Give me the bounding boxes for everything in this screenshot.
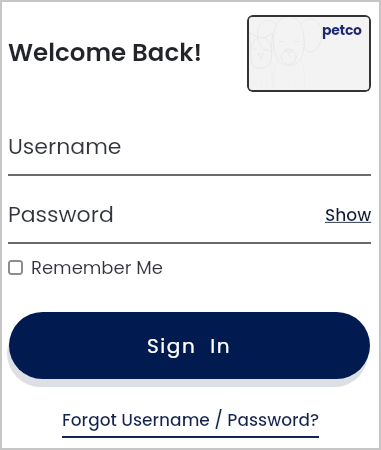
button[interactable]: Password xyxy=(8,190,371,244)
staticText: Show xyxy=(325,203,372,227)
staticText: Password xyxy=(8,199,114,230)
button[interactable]: Remember Me xyxy=(8,255,163,280)
staticText: Welcome Back! xyxy=(8,35,203,69)
staticText: petco xyxy=(322,20,362,40)
button[interactable]: Sign In xyxy=(9,312,370,379)
staticText: Remember Me xyxy=(31,255,163,280)
staticText: Sign In xyxy=(147,332,232,360)
button[interactable]: Username xyxy=(8,122,371,176)
staticText: Username xyxy=(8,131,122,162)
staticText: Forgot Username / Password? xyxy=(62,408,320,432)
button[interactable]: Show xyxy=(317,199,379,231)
button[interactable]: Forgot Username / Password? xyxy=(0,404,381,440)
other: Petco Pay card xyxy=(247,15,371,92)
